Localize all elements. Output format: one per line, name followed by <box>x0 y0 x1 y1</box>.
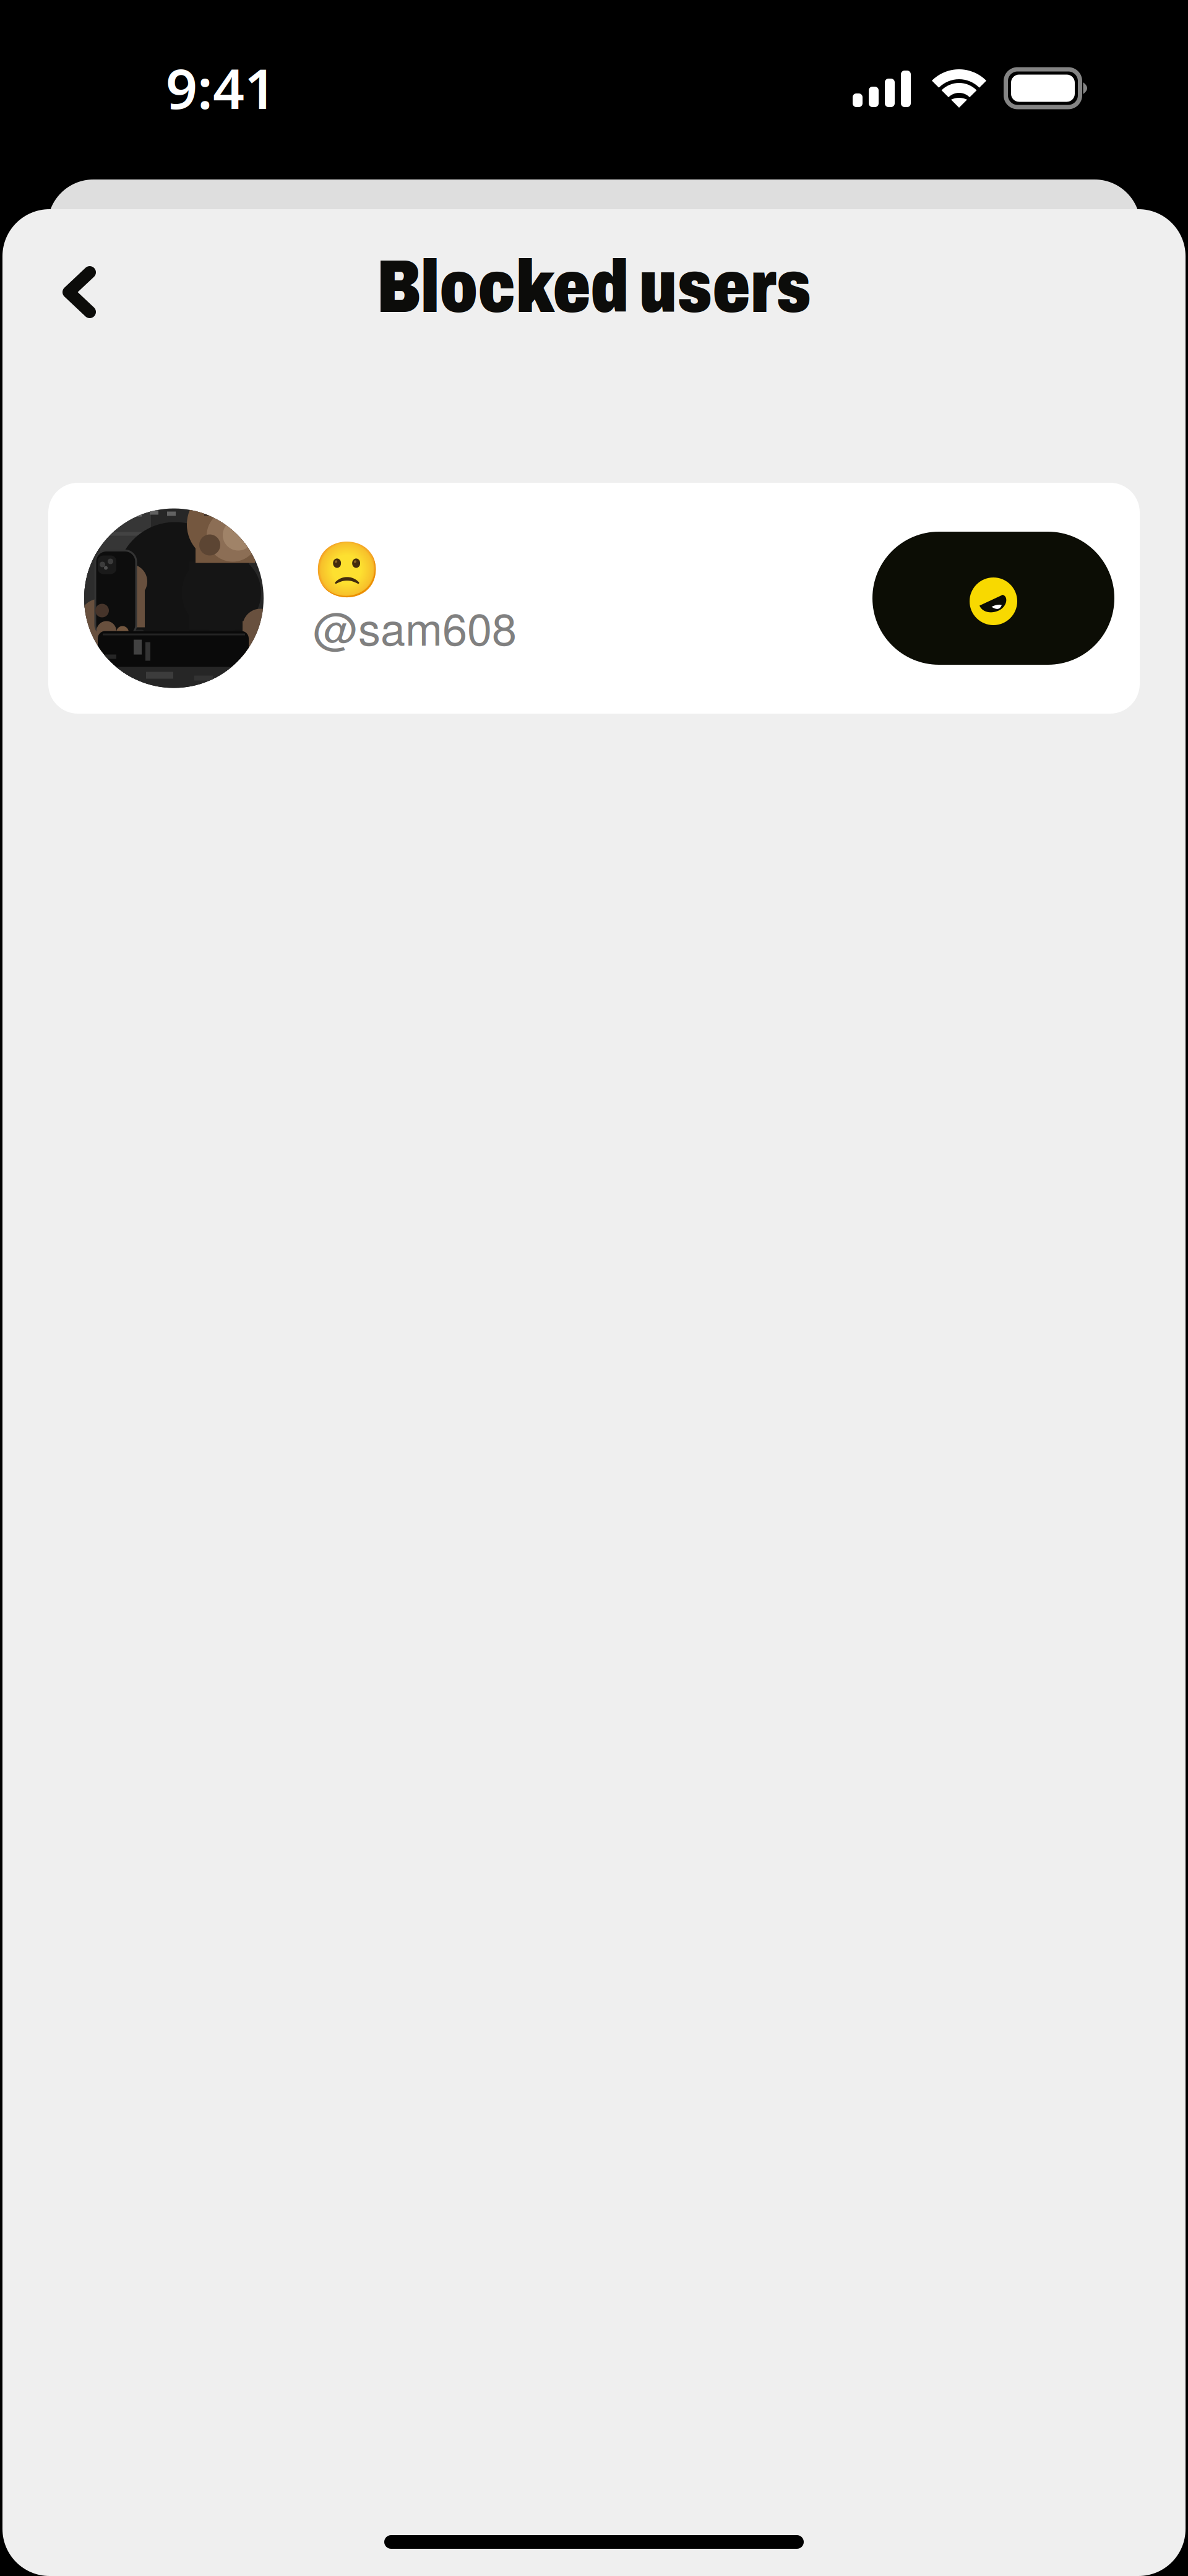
button[interactable]: Unblock <box>872 532 1114 665</box>
staticText: @sam608 <box>313 594 517 658</box>
staticText: 🙁 <box>313 539 381 601</box>
button[interactable]: 🙁 <box>48 483 1140 714</box>
staticText: 9:41 <box>166 51 276 124</box>
button[interactable]: Back <box>33 246 126 339</box>
staticText: Blocked users <box>377 247 811 328</box>
